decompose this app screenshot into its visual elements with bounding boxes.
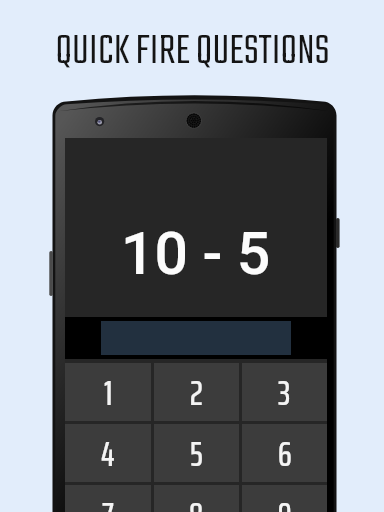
staticText: 8 [189,487,204,512]
button[interactable]: 4 [65,424,151,482]
staticText: 9 [278,487,292,512]
button[interactable]: 9 [242,485,327,512]
staticText: 10 - 5 [121,219,271,288]
staticText: 4 [101,426,115,481]
staticText: 2 [190,365,203,420]
button[interactable]: 3 [242,363,327,421]
button[interactable]: 5 [154,424,239,482]
staticText: 1 [104,365,113,420]
staticText: 6 [278,426,292,481]
button[interactable]: 6 [242,424,327,482]
staticText: 3 [278,365,291,420]
button[interactable]: 8 [154,485,239,512]
staticText: QUICK FIRE QUESTIONS [55,19,330,71]
button[interactable]: 2 [154,363,239,421]
staticText: 5 [190,426,203,481]
button[interactable]: 1 [65,363,151,421]
button[interactable]: 7 [65,485,151,512]
staticText: 7 [102,487,114,512]
